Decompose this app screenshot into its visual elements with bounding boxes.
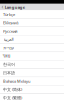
- staticText: 한국어: [3, 62, 15, 67]
- staticText: ไทย: [3, 53, 10, 59]
- staticText: 中文 (繁體): [3, 95, 22, 100]
- staticText: Русский: [3, 28, 17, 34]
- button[interactable]: Ελληνικά: [0, 19, 64, 27]
- button[interactable]: 日本語: [0, 69, 64, 77]
- button[interactable]: 中文 (简体): [0, 85, 64, 94]
- staticText: Language: [5, 4, 25, 10]
- staticText: 中文 (简体): [3, 87, 22, 92]
- button[interactable]: Русский: [0, 27, 64, 35]
- button[interactable]: Türkçe: [0, 10, 64, 19]
- staticText: עברית: [3, 45, 14, 50]
- staticText: العربية: [3, 37, 13, 42]
- button[interactable]: Bahasa Melayu: [0, 77, 64, 85]
- staticText: Bahasa Melayu: [3, 78, 30, 84]
- button[interactable]: ไทย: [0, 52, 64, 60]
- button[interactable]: 中文 (繁體): [0, 94, 64, 100]
- button[interactable]: Back: [1, 5, 4, 10]
- staticText: 日本語: [3, 70, 15, 75]
- staticText: Ελληνικά: [3, 20, 18, 25]
- button[interactable]: 한국어: [0, 60, 64, 69]
- button[interactable]: עברית: [0, 44, 64, 52]
- button[interactable]: العربية: [0, 35, 64, 44]
- staticText: Türkçe: [3, 12, 15, 17]
